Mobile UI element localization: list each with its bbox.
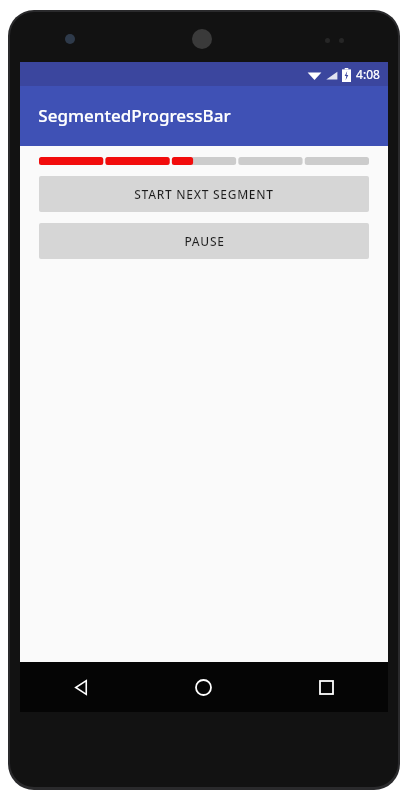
button[interactable]: PAUSE [39, 223, 369, 259]
staticText: PAUSE [184, 233, 225, 249]
button[interactable]: Back [20, 662, 142, 712]
staticText: 4:08 [356, 66, 380, 82]
button[interactable]: Recent apps [265, 662, 388, 712]
staticText: SegmentedProgressBar [38, 104, 231, 127]
staticText: START NEXT SEGMENT [134, 186, 274, 202]
button[interactable]: START NEXT SEGMENT [39, 176, 369, 212]
button[interactable]: Home [142, 662, 265, 712]
